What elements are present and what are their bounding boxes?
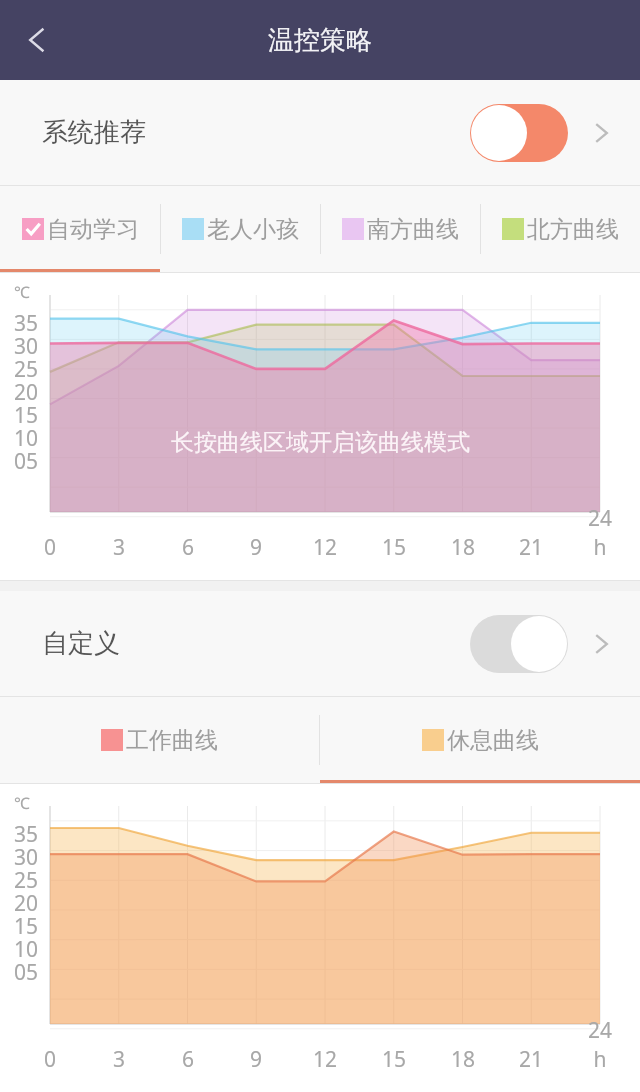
staticText: 12 (307, 1045, 343, 1074)
staticText: 05 (14, 447, 39, 476)
staticText: 9 (238, 1045, 274, 1074)
staticText: 18 (445, 533, 481, 562)
staticText: 北方曲线 (527, 215, 619, 244)
staticText: 20 (14, 889, 39, 918)
staticText: 6 (170, 533, 206, 562)
staticText: 15 (14, 912, 39, 941)
staticText: 9 (238, 533, 274, 562)
staticText: ℃ (14, 281, 30, 303)
staticText: 10 (14, 424, 39, 453)
staticText: 21 (513, 533, 549, 562)
button[interactable]: 工作曲线 (0, 697, 319, 783)
button[interactable]: ℃ (0, 784, 640, 1092)
button[interactable]: 南方曲线 (321, 186, 480, 272)
staticText: 0 (32, 533, 68, 562)
staticText: 24h (582, 504, 618, 562)
button[interactable]: 自定义 (0, 591, 640, 696)
staticText: ℃ (14, 792, 30, 814)
button[interactable]: Back (0, 0, 76, 80)
staticText: 21 (513, 1045, 549, 1074)
staticText: 30 (14, 843, 39, 872)
button[interactable]: 自动学习 (0, 186, 160, 272)
staticText: 25 (14, 355, 39, 384)
button[interactable]: ℃ (0, 273, 640, 580)
button[interactable]: 北方曲线 (481, 186, 640, 272)
button[interactable]: 系统推荐 (0, 80, 640, 185)
staticText: 3 (101, 1045, 137, 1074)
button[interactable]: 休息曲线 (320, 697, 640, 783)
staticText: 15 (376, 1045, 412, 1074)
button[interactable]: Disabled (468, 613, 570, 675)
staticText: 15 (376, 533, 412, 562)
staticText: 35 (14, 820, 39, 849)
staticText: 休息曲线 (447, 726, 539, 755)
staticText: 24h (582, 1016, 618, 1074)
staticText: 0 (32, 1045, 68, 1074)
staticText: 自动学习 (47, 215, 139, 244)
staticText: 老人小孩 (207, 215, 299, 244)
staticText: 05 (14, 958, 39, 987)
staticText: 18 (445, 1045, 481, 1074)
button[interactable]: Enabled (468, 102, 570, 164)
staticText: 长按曲线区域开启该曲线模式 (171, 428, 470, 457)
staticText: 温控策略 (268, 24, 372, 57)
staticText: 6 (170, 1045, 206, 1074)
staticText: 自定义 (42, 627, 120, 660)
staticText: 30 (14, 332, 39, 361)
staticText: 12 (307, 533, 343, 562)
staticText: 15 (14, 401, 39, 430)
staticText: 工作曲线 (126, 726, 218, 755)
staticText: 35 (14, 309, 39, 338)
staticText: 20 (14, 378, 39, 407)
staticText: 系统推荐 (42, 116, 146, 149)
button[interactable]: 老人小孩 (161, 186, 320, 272)
button[interactable]: Details (570, 591, 632, 696)
staticText: 10 (14, 935, 39, 964)
staticText: 3 (101, 533, 137, 562)
staticText: 25 (14, 866, 39, 895)
staticText: 南方曲线 (367, 215, 459, 244)
button[interactable]: Details (570, 80, 632, 185)
